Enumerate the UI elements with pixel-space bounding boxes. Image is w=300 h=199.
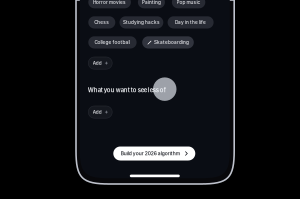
button[interactable]: Build your 2026 algorithm [113, 146, 195, 160]
staticText: Horror movies [93, 0, 126, 5]
staticText: Add [93, 109, 102, 115]
button[interactable]: Add [88, 106, 112, 118]
button[interactable]: Add [88, 57, 112, 69]
staticText: Day in the life [175, 20, 206, 25]
button[interactable]: Day in the life [168, 16, 214, 28]
staticText: Pop music [177, 0, 201, 5]
button[interactable]: Horror movies [88, 0, 131, 8]
button[interactable]: Studying hacks [119, 16, 163, 28]
staticText: What you want to see less of [88, 87, 166, 94]
button[interactable]: Skateboarding [142, 36, 194, 48]
button[interactable]: Painting [138, 0, 165, 8]
staticText: Skateboarding [154, 40, 189, 45]
staticText: Add [93, 60, 102, 66]
button[interactable]: Pop music [172, 0, 205, 8]
staticText: College football [94, 40, 130, 45]
staticText: Studying hacks [123, 20, 160, 25]
staticText: Painting [142, 0, 161, 5]
button[interactable]: Chess [88, 16, 115, 28]
staticText: Chess [94, 20, 109, 25]
staticText: Build your 2026 algorithm [121, 150, 180, 156]
button[interactable]: College football [88, 36, 137, 48]
